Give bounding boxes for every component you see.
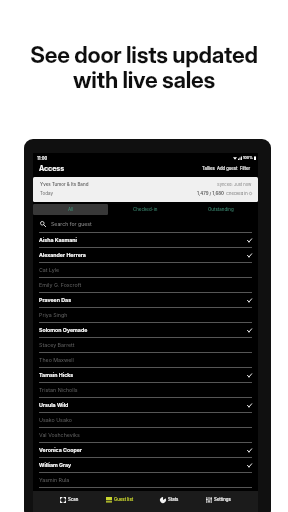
other: Checked in bbox=[247, 238, 252, 243]
staticText: 1,479 / 1,680 bbox=[197, 191, 225, 196]
staticText: Yves Tumor & Its Band bbox=[40, 182, 89, 187]
button[interactable]: Yasmin Rula bbox=[39, 473, 252, 487]
staticText: Search for guest bbox=[51, 221, 92, 227]
staticText: Solomon Oyemade bbox=[39, 327, 88, 333]
button[interactable]: Checked-in bbox=[108, 204, 183, 215]
staticText: Settings bbox=[214, 497, 231, 502]
button[interactable]: Add guest bbox=[216, 164, 239, 173]
button[interactable]: Stacey Barrett bbox=[39, 338, 252, 352]
staticText: Praveen Das bbox=[39, 297, 72, 303]
button[interactable]: Tallies bbox=[201, 164, 216, 173]
button[interactable]: Praveen Das bbox=[39, 293, 252, 307]
staticText: Aisha Kasmani bbox=[39, 237, 77, 243]
staticText: Ursula Wild bbox=[39, 402, 69, 408]
button[interactable]: Tristan Nicholls bbox=[39, 383, 252, 397]
staticText: Stacey Barrett bbox=[39, 342, 75, 348]
button[interactable]: Veronica Cooper bbox=[39, 443, 252, 457]
staticText: Alexander Herrera bbox=[39, 252, 86, 258]
staticText: Yasmin Rula bbox=[39, 477, 70, 483]
button[interactable]: Outstanding bbox=[183, 204, 258, 215]
other: Checked in bbox=[247, 463, 252, 468]
staticText: Checked in bbox=[226, 191, 248, 196]
button[interactable]: Emily G. Foxcroft bbox=[39, 278, 252, 292]
staticText: Access bbox=[39, 164, 65, 173]
button[interactable]: Theo Maxwell bbox=[39, 353, 252, 367]
button[interactable]: Usako Usako bbox=[39, 413, 252, 427]
staticText: Tamsin Hicks bbox=[39, 372, 74, 378]
staticText: Emily G. Foxcroft bbox=[39, 282, 82, 288]
staticText: Today bbox=[40, 191, 53, 196]
staticText: Theo Maxwell bbox=[39, 357, 74, 363]
staticText: Usako Usako bbox=[39, 417, 72, 423]
button[interactable]: Filter bbox=[239, 164, 252, 173]
button[interactable]: Priya Singh bbox=[39, 308, 252, 322]
staticText: Filter bbox=[240, 166, 251, 171]
button[interactable]: Alexander Herrera bbox=[39, 248, 252, 262]
staticText: Cat Lyle bbox=[39, 267, 60, 273]
button[interactable]: Stats bbox=[160, 491, 179, 512]
other: Checked in bbox=[247, 403, 252, 408]
staticText: Tristan Nicholls bbox=[39, 387, 78, 393]
staticText: Add guest bbox=[217, 166, 238, 171]
staticText: William Gray bbox=[39, 462, 72, 468]
staticText: Guest list bbox=[114, 497, 134, 502]
staticText: 100% bbox=[243, 156, 253, 160]
button[interactable]: William Gray bbox=[39, 458, 252, 472]
button[interactable]: Solomon Oyemade bbox=[39, 323, 252, 337]
other: Checked in bbox=[247, 328, 252, 333]
staticText: Checked-in bbox=[133, 207, 158, 212]
staticText: 11:00 bbox=[37, 156, 48, 161]
button[interactable]: Settings bbox=[206, 491, 231, 512]
other: Checked in bbox=[247, 373, 252, 378]
staticText: Scan bbox=[68, 497, 79, 502]
staticText: All bbox=[68, 207, 74, 212]
button[interactable]: Search bbox=[40, 217, 252, 231]
button[interactable]: Yves Tumor & Its Band bbox=[33, 177, 258, 202]
other: Checked in bbox=[247, 253, 252, 258]
button[interactable]: Aisha Kasmani bbox=[39, 233, 252, 247]
staticText: See door lists updated with live sales bbox=[0, 41, 288, 94]
button[interactable]: Scan bbox=[60, 491, 79, 512]
button[interactable]: Ursula Wild bbox=[39, 398, 252, 412]
staticText: Tallies bbox=[202, 166, 215, 171]
staticText: Veronica Cooper bbox=[39, 447, 82, 453]
staticText: Stats bbox=[168, 497, 179, 502]
staticText: Priya Singh bbox=[39, 312, 68, 318]
button[interactable]: Guest list bbox=[106, 491, 134, 512]
staticText: Synced: Just now bbox=[217, 182, 252, 187]
button[interactable]: Cat Lyle bbox=[39, 263, 252, 277]
button[interactable]: All bbox=[33, 204, 108, 215]
other: Search bbox=[40, 221, 46, 227]
other: Checked in bbox=[247, 298, 252, 303]
button[interactable]: Val Voshcheviks bbox=[39, 428, 252, 442]
staticText: Outstanding bbox=[208, 207, 234, 212]
other: Checked in bbox=[247, 448, 252, 453]
staticText: Val Voshcheviks bbox=[39, 432, 80, 438]
button[interactable]: Tamsin Hicks bbox=[39, 368, 252, 382]
